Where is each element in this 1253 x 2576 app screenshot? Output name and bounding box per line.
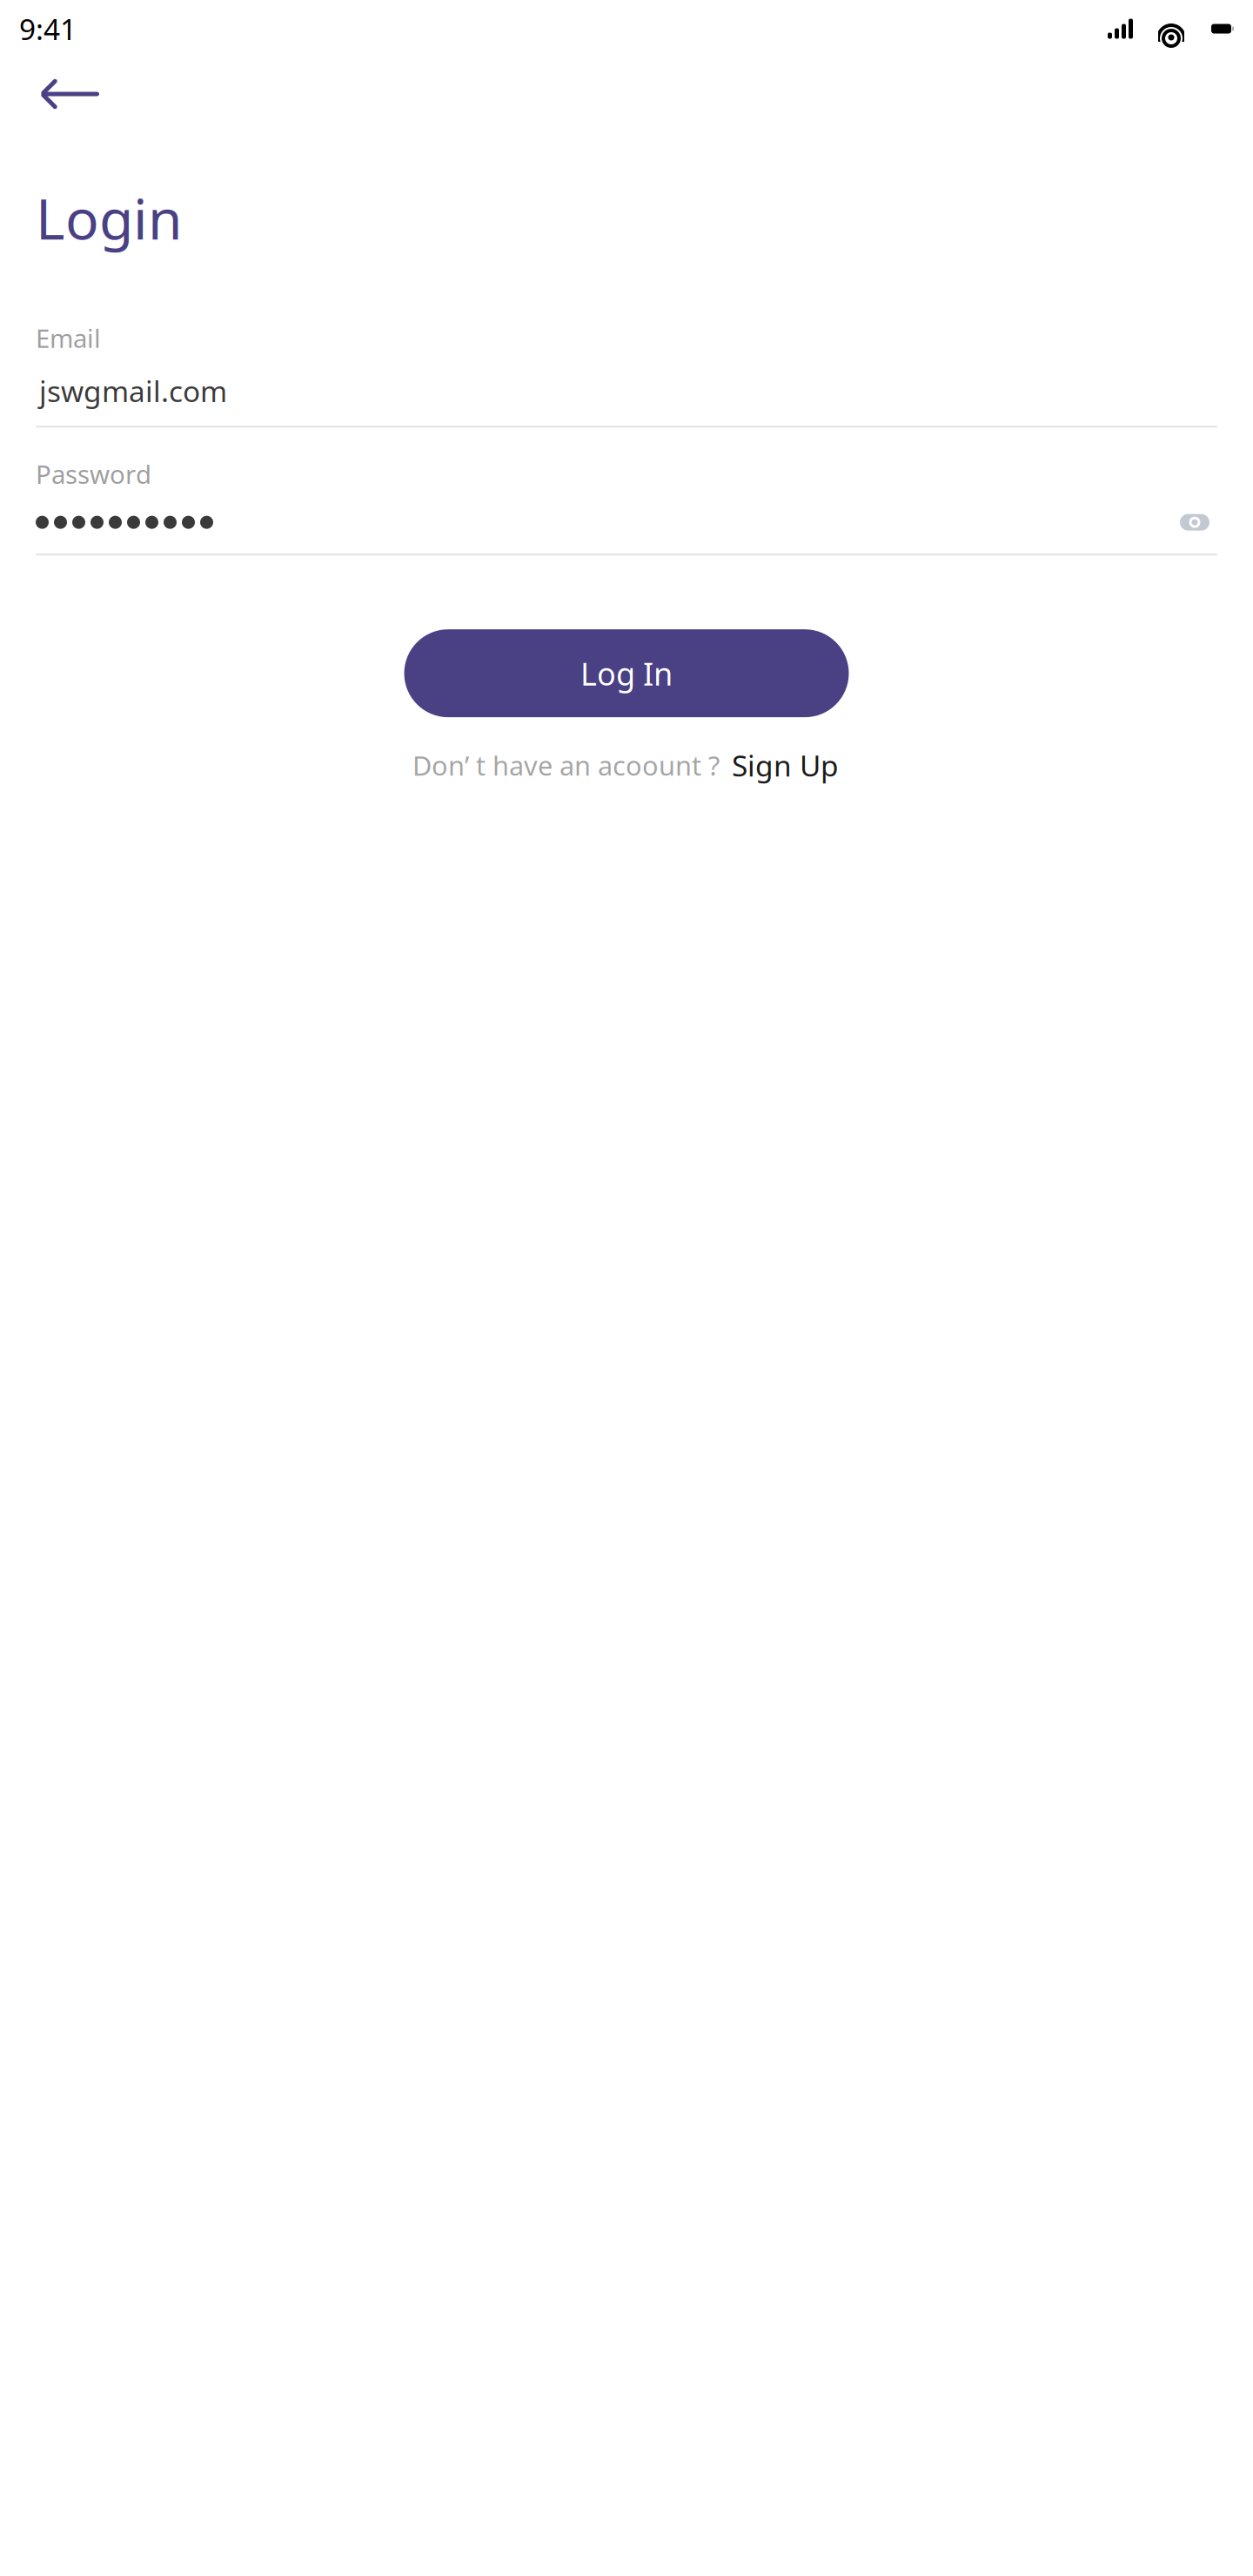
staticText: Login — [36, 181, 183, 255]
staticText: jswgmail.com — [39, 372, 227, 410]
button[interactable]: Sign Up — [730, 741, 841, 790]
staticText: Log In — [580, 653, 673, 694]
staticText: 9:41 — [19, 9, 77, 48]
button[interactable]: Log In — [404, 629, 849, 717]
staticText: Email — [36, 321, 101, 355]
button[interactable]: Back — [25, 61, 116, 127]
staticText: Sign Up — [732, 746, 839, 785]
staticText: Password — [36, 457, 151, 491]
staticText: Don’ t have an acoount ? — [412, 747, 720, 783]
button[interactable]: Show password — [1172, 503, 1217, 541]
